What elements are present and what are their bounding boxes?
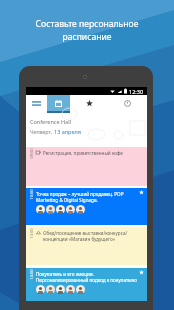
button[interactable]: Now: [108, 95, 147, 112]
button[interactable]: Open navigation menu: [26, 95, 47, 112]
button[interactable]: 10:00: [26, 188, 147, 225]
staticText: Покупатель и его эмоции. Персонализирова…: [36, 271, 137, 283]
staticText: Точка продаж – лучший продавец. POP Mark…: [36, 191, 124, 203]
staticText: Conference Hall: [30, 118, 72, 125]
staticText: 13 апреля: [54, 128, 81, 135]
button[interactable]: 14:00: [26, 268, 147, 301]
staticText: 12:30: [129, 88, 144, 95]
staticText: 09:00: [28, 146, 33, 160]
button[interactable]: 09:00: [26, 147, 147, 186]
staticText: 14:00: [28, 267, 33, 281]
button[interactable]: Favorites: [70, 95, 108, 112]
button[interactable]: 13:00: [26, 227, 147, 265]
staticText: Составьте персональное расписание: [0, 18, 174, 43]
staticText: Четверг,: [30, 128, 54, 135]
staticText: 13:00: [28, 226, 33, 240]
button[interactable]: Schedule: [47, 95, 70, 112]
staticText: 10:00: [28, 187, 33, 201]
staticText: Обед/посещение выставки/конкурса/ концеп…: [43, 230, 128, 242]
staticText: Регистрация, приветственный кофе: [43, 150, 123, 156]
